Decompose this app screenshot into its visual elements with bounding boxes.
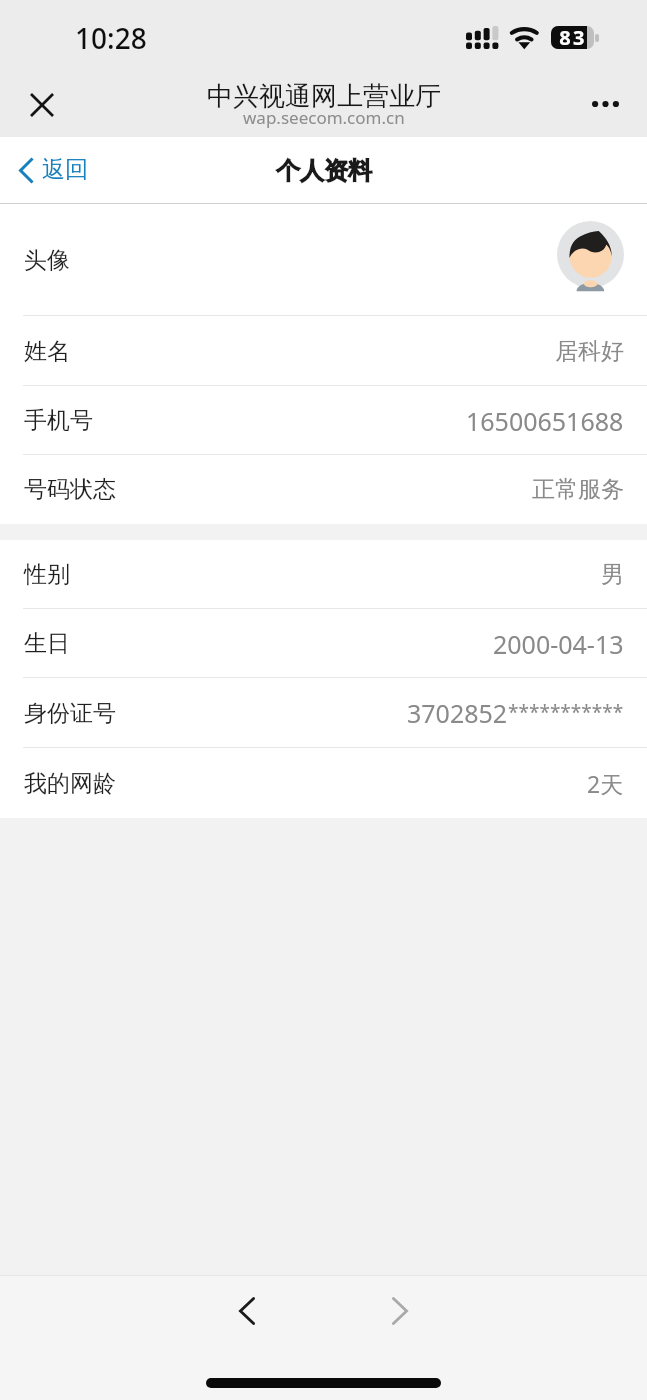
button[interactable]: 姓名 [0, 316, 647, 386]
staticText: 10:28 [75, 19, 147, 57]
staticText: 头像 [24, 246, 70, 275]
staticText: *********** [508, 699, 624, 725]
staticText: 手机号 [24, 406, 93, 435]
staticText: 生日 [24, 629, 70, 658]
button[interactable]: Back [211, 1275, 283, 1347]
staticText: 身份证号 [24, 699, 116, 728]
button[interactable]: More options [579, 77, 631, 129]
button[interactable]: 手机号 [0, 386, 647, 455]
button[interactable]: Forward [364, 1275, 436, 1347]
staticText: 83 [554, 26, 592, 47]
staticText: 性别 [24, 560, 70, 589]
staticText: 男 [601, 560, 624, 589]
staticText: 2天 [587, 768, 624, 799]
staticText: 3702852 [407, 696, 508, 730]
staticText: 居科好 [555, 337, 624, 366]
button[interactable]: Close [17, 79, 65, 127]
staticText: 我的网龄 [24, 769, 116, 798]
button[interactable]: 头像 [0, 204, 647, 316]
button[interactable]: 生日 [0, 609, 647, 678]
staticText: wap.seecom.com.cn [243, 106, 405, 129]
button[interactable]: 我的网龄 [0, 748, 647, 818]
staticText: 16500651688 [466, 404, 624, 438]
button[interactable]: 返回 [18, 156, 88, 185]
staticText: 正常服务 [532, 475, 624, 504]
button[interactable]: 性别 [0, 540, 647, 609]
button[interactable]: 号码状态 [0, 455, 647, 524]
button[interactable]: 身份证号 [0, 678, 647, 748]
staticText: 2000-04-13 [493, 627, 624, 661]
staticText: 姓名 [24, 337, 70, 366]
staticText: 个人资料 [276, 156, 372, 186]
staticText: 中兴视通网上营业厅 [207, 80, 441, 113]
staticText: 号码状态 [24, 475, 116, 504]
staticText: 返回 [42, 155, 88, 184]
